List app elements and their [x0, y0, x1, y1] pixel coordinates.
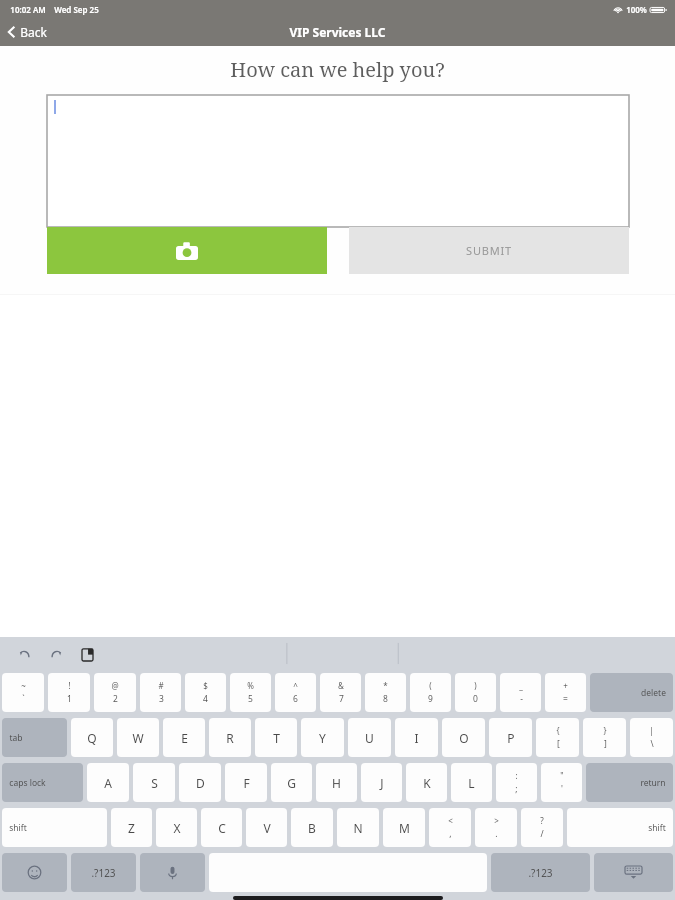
button[interactable]: .?123	[71, 853, 136, 892]
staticText: H	[332, 775, 341, 791]
staticText: @	[111, 680, 119, 691]
button[interactable]: M	[383, 808, 425, 847]
button[interactable]: J	[361, 763, 402, 802]
staticText: ?	[540, 815, 544, 826]
button[interactable]: *	[365, 673, 406, 712]
button[interactable]: .?123	[491, 853, 590, 892]
button[interactable]: %	[230, 673, 271, 712]
button[interactable]: return	[586, 763, 673, 802]
button[interactable]: Take photo	[47, 227, 327, 274]
staticText: 8	[383, 693, 388, 705]
button[interactable]: C	[201, 808, 242, 847]
button[interactable]: X	[156, 808, 197, 847]
button[interactable]: :	[496, 763, 537, 802]
button[interactable]: !	[48, 673, 90, 712]
button[interactable]: @	[94, 673, 136, 712]
button[interactable]: A	[87, 763, 129, 802]
button[interactable]: N	[337, 808, 379, 847]
staticText: 10:02 AM	[10, 4, 46, 15]
button[interactable]: L	[451, 763, 492, 802]
staticText: delete	[641, 687, 666, 699]
button[interactable]: SUBMIT	[349, 227, 629, 274]
button[interactable]: Z	[111, 808, 152, 847]
button[interactable]: shift	[567, 808, 673, 847]
button[interactable]: &	[320, 673, 361, 712]
staticText: tab	[9, 732, 23, 744]
staticText: |	[649, 725, 654, 736]
staticText: ^	[293, 680, 298, 691]
button[interactable]: E	[163, 718, 205, 757]
staticText: U	[365, 730, 374, 746]
button[interactable]: ^	[275, 673, 316, 712]
staticText: 0	[473, 693, 478, 705]
button[interactable]: {	[536, 718, 579, 757]
button[interactable]: I	[395, 718, 438, 757]
button[interactable]: P	[489, 718, 532, 757]
staticText: 100%	[626, 4, 647, 15]
staticText: S	[151, 775, 158, 791]
button[interactable]: T	[255, 718, 297, 757]
button[interactable]: }	[583, 718, 626, 757]
staticText: Q	[87, 730, 97, 746]
button[interactable]: Q	[71, 718, 113, 757]
staticText: E	[181, 730, 188, 746]
button[interactable]: "	[541, 763, 582, 802]
button[interactable]: +	[545, 673, 586, 712]
staticText: A	[104, 775, 112, 791]
staticText: -	[520, 693, 523, 705]
staticText: R	[226, 730, 234, 746]
button[interactable]: D	[179, 763, 221, 802]
button[interactable]: B	[291, 808, 333, 847]
staticText: <	[448, 815, 453, 826]
button[interactable]: Paste	[76, 643, 98, 665]
button[interactable]: O	[442, 718, 485, 757]
button[interactable]: Undo	[14, 643, 36, 665]
button[interactable]: H	[316, 763, 357, 802]
staticText: 7	[339, 693, 344, 705]
staticText: L	[468, 775, 475, 791]
button[interactable]: #	[140, 673, 181, 712]
button[interactable]: Redo	[45, 643, 67, 665]
button[interactable]: >	[475, 808, 517, 847]
button[interactable]: )	[455, 673, 496, 712]
button[interactable]: W	[117, 718, 159, 757]
button[interactable]: |	[630, 718, 673, 757]
button[interactable]: Hide keyboard	[594, 853, 673, 892]
staticText: [	[557, 738, 560, 750]
button[interactable]	[47, 95, 629, 227]
button[interactable]: V	[246, 808, 287, 847]
staticText: I	[414, 730, 419, 746]
button[interactable]: F	[225, 763, 267, 802]
button[interactable]: Dictation	[140, 853, 205, 892]
button[interactable]: ~	[2, 673, 44, 712]
button[interactable]: caps lock	[2, 763, 83, 802]
button[interactable]: R	[209, 718, 251, 757]
button[interactable]: ?	[521, 808, 563, 847]
staticText: N	[353, 820, 363, 836]
button[interactable]: tab	[2, 718, 67, 757]
button[interactable]: shift	[2, 808, 107, 847]
button[interactable]: (	[410, 673, 451, 712]
button[interactable]: $	[185, 673, 226, 712]
staticText: C	[218, 820, 226, 836]
staticText: return	[640, 777, 666, 789]
staticText: =	[563, 693, 568, 705]
staticText: 5	[248, 693, 253, 705]
button[interactable]: S	[133, 763, 175, 802]
button[interactable]: Back	[0, 20, 59, 44]
button[interactable]: Y	[301, 718, 344, 757]
button[interactable]: U	[348, 718, 391, 757]
button[interactable]: <	[429, 808, 471, 847]
button[interactable]: delete	[590, 673, 673, 712]
staticText: 2	[113, 693, 118, 705]
button[interactable]: G	[271, 763, 312, 802]
staticText: SUBMIT	[466, 243, 512, 258]
button[interactable]: _	[500, 673, 541, 712]
staticText: }	[603, 725, 607, 736]
staticText: /	[540, 828, 544, 840]
button[interactable]: K	[406, 763, 447, 802]
staticText: G	[287, 775, 296, 791]
staticText: +	[563, 680, 568, 691]
button[interactable]: Emoji	[2, 853, 67, 892]
